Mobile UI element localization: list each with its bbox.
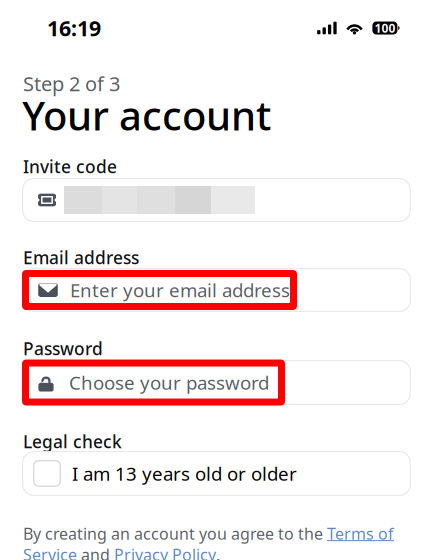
button[interactable]: Terms of: [327, 523, 394, 544]
button[interactable]: Privacy Policy: [114, 544, 216, 560]
staticText: Privacy Policy: [114, 544, 216, 560]
staticText: I am 13 years old or older: [72, 461, 297, 486]
staticText: .: [216, 544, 220, 560]
staticText: Service: [23, 544, 77, 560]
button[interactable]: Service: [23, 544, 77, 560]
staticText: Terms of: [327, 523, 394, 544]
staticText: Step 2 of 3: [23, 70, 120, 97]
staticText: Invite code: [23, 155, 117, 178]
staticText: Legal check: [23, 430, 122, 453]
button[interactable]: I am 13 years old or older: [22, 451, 411, 496]
button[interactable]: Enter your email address: [22, 268, 411, 312]
staticText: Choose your password: [69, 370, 269, 395]
staticText: Enter your email address: [70, 278, 290, 302]
staticText: 100: [374, 20, 395, 36]
staticText: Your account: [22, 88, 271, 141]
staticText: 16:19: [47, 14, 101, 42]
staticText: Password: [23, 337, 103, 360]
staticText: and: [77, 544, 114, 560]
staticText: By creating an account you agree to the: [23, 523, 327, 544]
staticText: Email address: [23, 246, 139, 269]
button[interactable]: Choose your password: [22, 360, 411, 405]
